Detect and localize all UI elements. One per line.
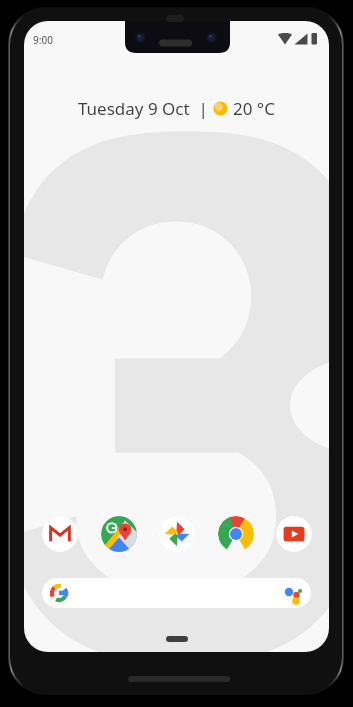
- button[interactable]: Gmail: [42, 516, 78, 552]
- button[interactable]: Photos: [159, 516, 195, 552]
- staticText: Tuesday 9 Oct |: [78, 97, 208, 120]
- button[interactable]: YouTube: [276, 516, 312, 552]
- button[interactable]: Chrome: [218, 516, 254, 552]
- button[interactable]: Maps: [101, 516, 137, 552]
- button[interactable]: Search: [42, 578, 311, 608]
- staticText: 9:00: [33, 33, 53, 47]
- staticText: 20 °C: [233, 97, 275, 120]
